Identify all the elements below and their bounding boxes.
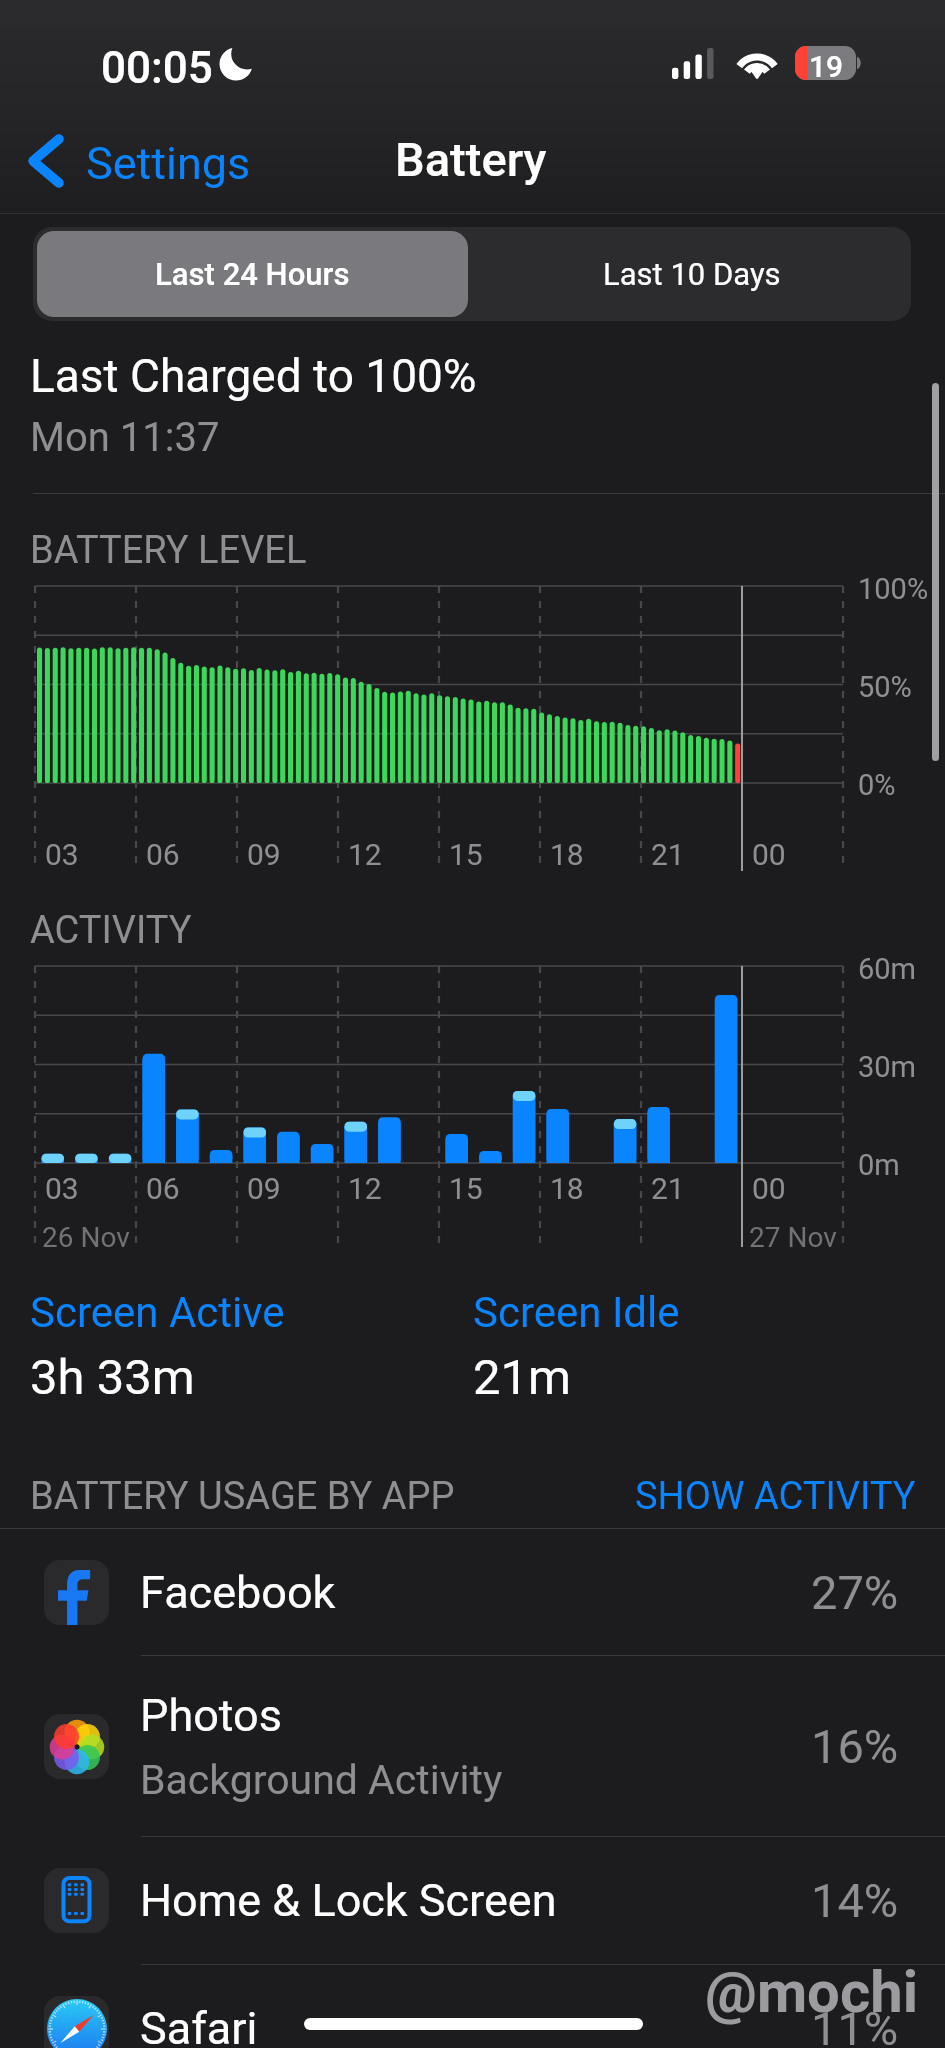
staticText: Screen Active (30, 1288, 285, 1337)
staticText: 00 (752, 1171, 786, 1206)
staticText: Facebook (140, 1566, 336, 1619)
staticText: 27 Nov (749, 1221, 837, 1254)
other: Do Not Disturb (218, 47, 254, 81)
button[interactable]: Facebook (0, 1529, 945, 1655)
staticText: 0m (858, 1148, 900, 1182)
other: Battery 19 percent (795, 46, 863, 80)
staticText: 100% (858, 572, 929, 606)
button[interactable]: Photos (0, 1656, 945, 1836)
button[interactable]: Home & Lock Screen (0, 1837, 945, 1964)
staticText: 12 (348, 837, 382, 872)
staticText: 14% (811, 1873, 899, 1928)
button[interactable]: Last 10 Days (472, 227, 911, 321)
staticText: 18 (550, 837, 584, 872)
staticText: 06 (146, 1171, 180, 1206)
staticText: 06 (146, 837, 180, 872)
staticText: Last 24 Hours (155, 256, 350, 292)
staticText: 15 (449, 837, 483, 872)
staticText: 03 (45, 837, 79, 872)
staticText: 15 (449, 1171, 483, 1206)
button[interactable]: Back (28, 134, 251, 192)
staticText: 16% (811, 1719, 899, 1774)
staticText: Home & Lock Screen (140, 1874, 557, 1927)
staticText: 3h 33m (30, 1349, 195, 1406)
staticText: Mon 11:37 (30, 414, 220, 461)
staticText: 11% (811, 2001, 899, 2048)
staticText: 09 (247, 837, 281, 872)
staticText: ACTIVITY (30, 908, 192, 953)
other: Cellular signal (672, 48, 720, 79)
staticText: 18 (550, 1171, 584, 1206)
staticText: 26 Nov (42, 1221, 130, 1254)
staticText: Last Charged to 100% (30, 349, 477, 403)
staticText: Photos (140, 1689, 283, 1742)
staticText: Screen Idle (473, 1288, 680, 1337)
staticText: Last 10 Days (603, 256, 781, 292)
staticText: 03 (45, 1171, 79, 1206)
staticText: Safari (140, 2002, 258, 2048)
staticText: 50% (858, 670, 912, 704)
other: Wi-Fi (735, 46, 779, 79)
staticText: 0% (858, 768, 896, 802)
staticText: 27% (811, 1565, 899, 1620)
button[interactable]: Last 24 Hours (37, 231, 468, 317)
staticText: @mochi (705, 1958, 919, 2026)
staticText: 21 (651, 837, 685, 872)
button[interactable]: SHOW ACTIVITY (635, 1474, 916, 1519)
staticText: BATTERY LEVEL (30, 528, 307, 573)
staticText: 00:05 (101, 42, 213, 94)
staticText: Background Activity (140, 1756, 503, 1804)
other: Back (28, 134, 64, 192)
staticText: 12 (348, 1171, 382, 1206)
staticText: SHOW ACTIVITY (635, 1474, 916, 1519)
button[interactable]: Safari (0, 1965, 945, 2048)
staticText: 09 (247, 1171, 281, 1206)
staticText: 30m (858, 1050, 917, 1084)
staticText: BATTERY USAGE BY APP (30, 1474, 455, 1519)
staticText: 19 (809, 49, 844, 83)
staticText: 21m (473, 1349, 572, 1406)
staticText: Battery (395, 132, 547, 187)
staticText: 60m (858, 952, 917, 986)
staticText: 21 (651, 1171, 685, 1206)
staticText: Settings (86, 137, 251, 190)
staticText: 00 (752, 837, 786, 872)
